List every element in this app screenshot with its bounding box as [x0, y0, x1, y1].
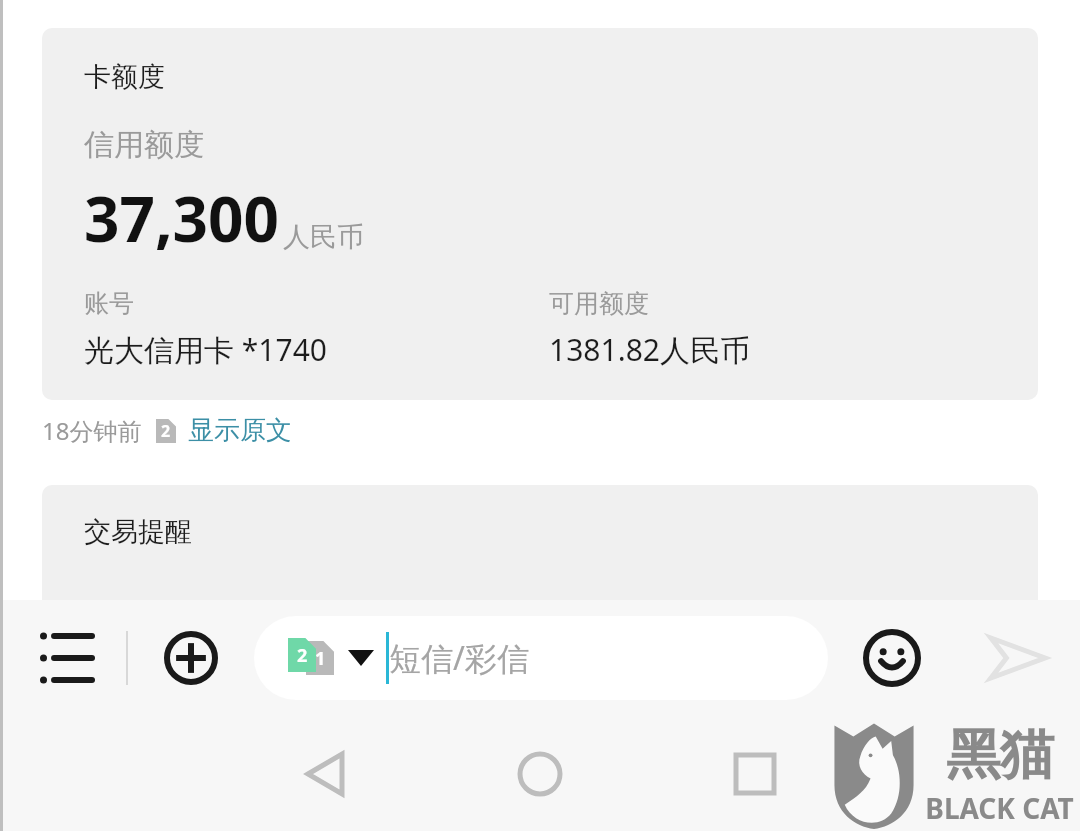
button[interactable]: Recent apps	[715, 734, 795, 814]
button[interactable]: Add attachment	[155, 622, 227, 694]
button[interactable]: Send	[978, 618, 1058, 698]
staticText: BLACK CAT	[925, 789, 1074, 827]
staticText: 2	[161, 420, 171, 442]
button[interactable]: List	[30, 622, 102, 694]
staticText: 交易提醒	[84, 515, 192, 549]
staticText: 黑猫	[946, 721, 1054, 789]
staticText: 显示原文	[188, 414, 292, 447]
staticText: 2	[297, 643, 308, 668]
button[interactable]: Back	[285, 734, 365, 814]
staticText: 37,300	[84, 176, 279, 260]
button[interactable]: Home	[500, 734, 580, 814]
button[interactable]: 1	[254, 616, 828, 700]
staticText: 18分钟前	[42, 414, 142, 447]
staticText: 信用额度	[84, 126, 204, 164]
staticText: 1381.82人民币	[549, 329, 750, 370]
button[interactable]: 卡额度	[42, 28, 1038, 400]
button[interactable]: 交易提醒	[42, 485, 1038, 605]
staticText: 可用额度	[549, 288, 649, 319]
staticText: 人民币	[283, 220, 364, 254]
button[interactable]: 显示原文	[188, 414, 292, 447]
staticText: 1	[315, 646, 326, 671]
staticText: 卡额度	[84, 60, 165, 94]
staticText: 光大信用卡 *1740	[84, 329, 327, 370]
button[interactable]: Emoji	[852, 618, 932, 698]
staticText: 短信/彩信	[389, 636, 529, 680]
staticText: 账号	[84, 288, 134, 319]
